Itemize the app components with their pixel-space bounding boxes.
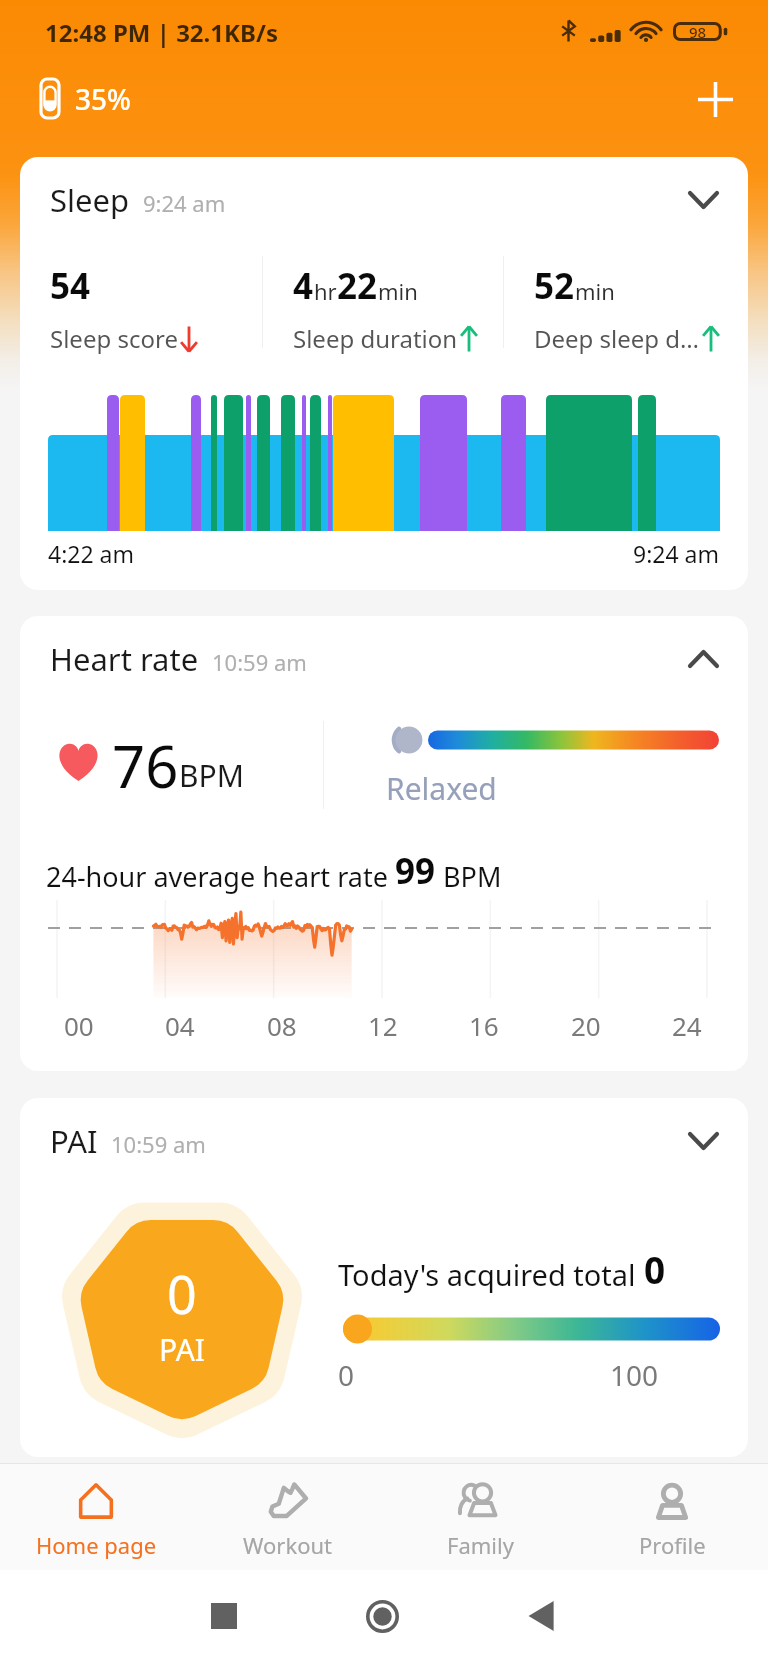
staticText: Sleep score — [50, 322, 178, 355]
staticText: hr — [314, 276, 337, 306]
staticText: 04 — [165, 1008, 195, 1043]
staticText: Profile — [639, 1530, 706, 1560]
button[interactable]: PAI — [20, 1098, 748, 1457]
staticText: 24 — [672, 1008, 702, 1043]
staticText: 08 — [267, 1008, 297, 1043]
staticText: Sleep — [50, 179, 130, 221]
staticText: 35% — [75, 80, 131, 118]
button[interactable]: Recents — [192, 1584, 256, 1648]
staticText: 4 — [293, 262, 314, 310]
button[interactable]: Add device — [684, 68, 746, 130]
staticText: 52 — [534, 262, 575, 310]
staticText: 76 — [112, 726, 179, 798]
staticText: 99 — [395, 847, 436, 895]
staticText: Relaxed — [386, 768, 497, 809]
staticText: BPM — [436, 858, 502, 895]
staticText: min — [378, 276, 418, 306]
staticText: 9:24 am — [143, 188, 226, 218]
staticText: 10:59 am — [212, 647, 307, 677]
button[interactable]: Expand — [674, 171, 732, 229]
button[interactable]: Expand — [674, 1112, 732, 1170]
staticText: PAI — [50, 1120, 98, 1162]
staticText: 0 — [167, 1258, 197, 1329]
staticText: 16 — [469, 1008, 499, 1043]
button[interactable]: Home page — [0, 1463, 192, 1570]
button[interactable]: Sleep — [20, 157, 748, 590]
staticText: 12:48 PM | 32.1KB/s — [45, 16, 278, 49]
staticText: 54 — [50, 262, 91, 310]
staticText: Heart rate — [50, 638, 199, 680]
staticText: BPM — [179, 755, 244, 796]
staticText: 12 — [368, 1008, 398, 1043]
staticText: 10:59 am — [111, 1129, 206, 1159]
staticText: 98 — [689, 22, 707, 41]
staticText: 9:24 am — [633, 538, 720, 569]
staticText: 20 — [571, 1008, 601, 1043]
button[interactable]: 35% — [41, 79, 131, 118]
staticText: 100 — [610, 1356, 659, 1394]
button[interactable]: Collapse — [674, 630, 732, 688]
staticText: Sleep duration — [293, 322, 458, 355]
button[interactable]: Profile — [576, 1463, 768, 1570]
staticText: min — [575, 276, 615, 306]
button[interactable]: Workout — [192, 1463, 384, 1570]
staticText: 24-hour average heart rate — [46, 858, 395, 895]
staticText: Family — [447, 1530, 514, 1560]
staticText: 0 — [644, 1244, 666, 1294]
staticText: Workout — [243, 1530, 333, 1560]
staticText: Home page — [36, 1530, 157, 1560]
staticText: 4:22 am — [48, 538, 135, 569]
button[interactable]: Heart rate — [20, 616, 748, 1071]
staticText: Today's acquired total — [338, 1255, 644, 1294]
staticText: 0 — [338, 1356, 355, 1394]
staticText: 22 — [337, 262, 378, 310]
button[interactable]: Back — [509, 1584, 573, 1648]
button[interactable]: Family — [384, 1463, 576, 1570]
staticText: 00 — [64, 1008, 94, 1043]
button[interactable]: Home — [350, 1584, 414, 1648]
staticText: Deep sleep d… — [534, 322, 700, 355]
staticText: PAI — [159, 1329, 205, 1370]
